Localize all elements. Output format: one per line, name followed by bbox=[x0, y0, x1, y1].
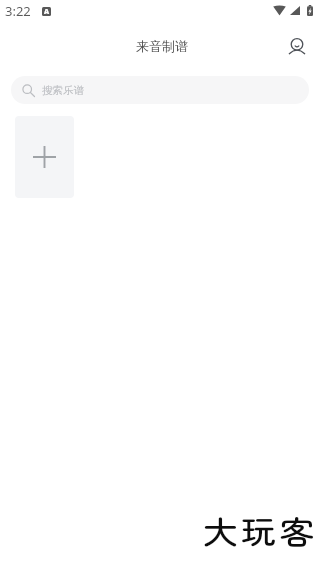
button[interactable]: Add score bbox=[15, 116, 74, 198]
staticText: 搜索乐谱 bbox=[42, 84, 84, 97]
button[interactable]: 搜索乐谱 bbox=[11, 76, 309, 104]
staticText: 3:22 bbox=[5, 2, 31, 20]
staticText: A bbox=[44, 7, 50, 16]
staticText: 来音制谱 bbox=[136, 38, 188, 54]
button[interactable]: Profile bbox=[284, 32, 310, 58]
